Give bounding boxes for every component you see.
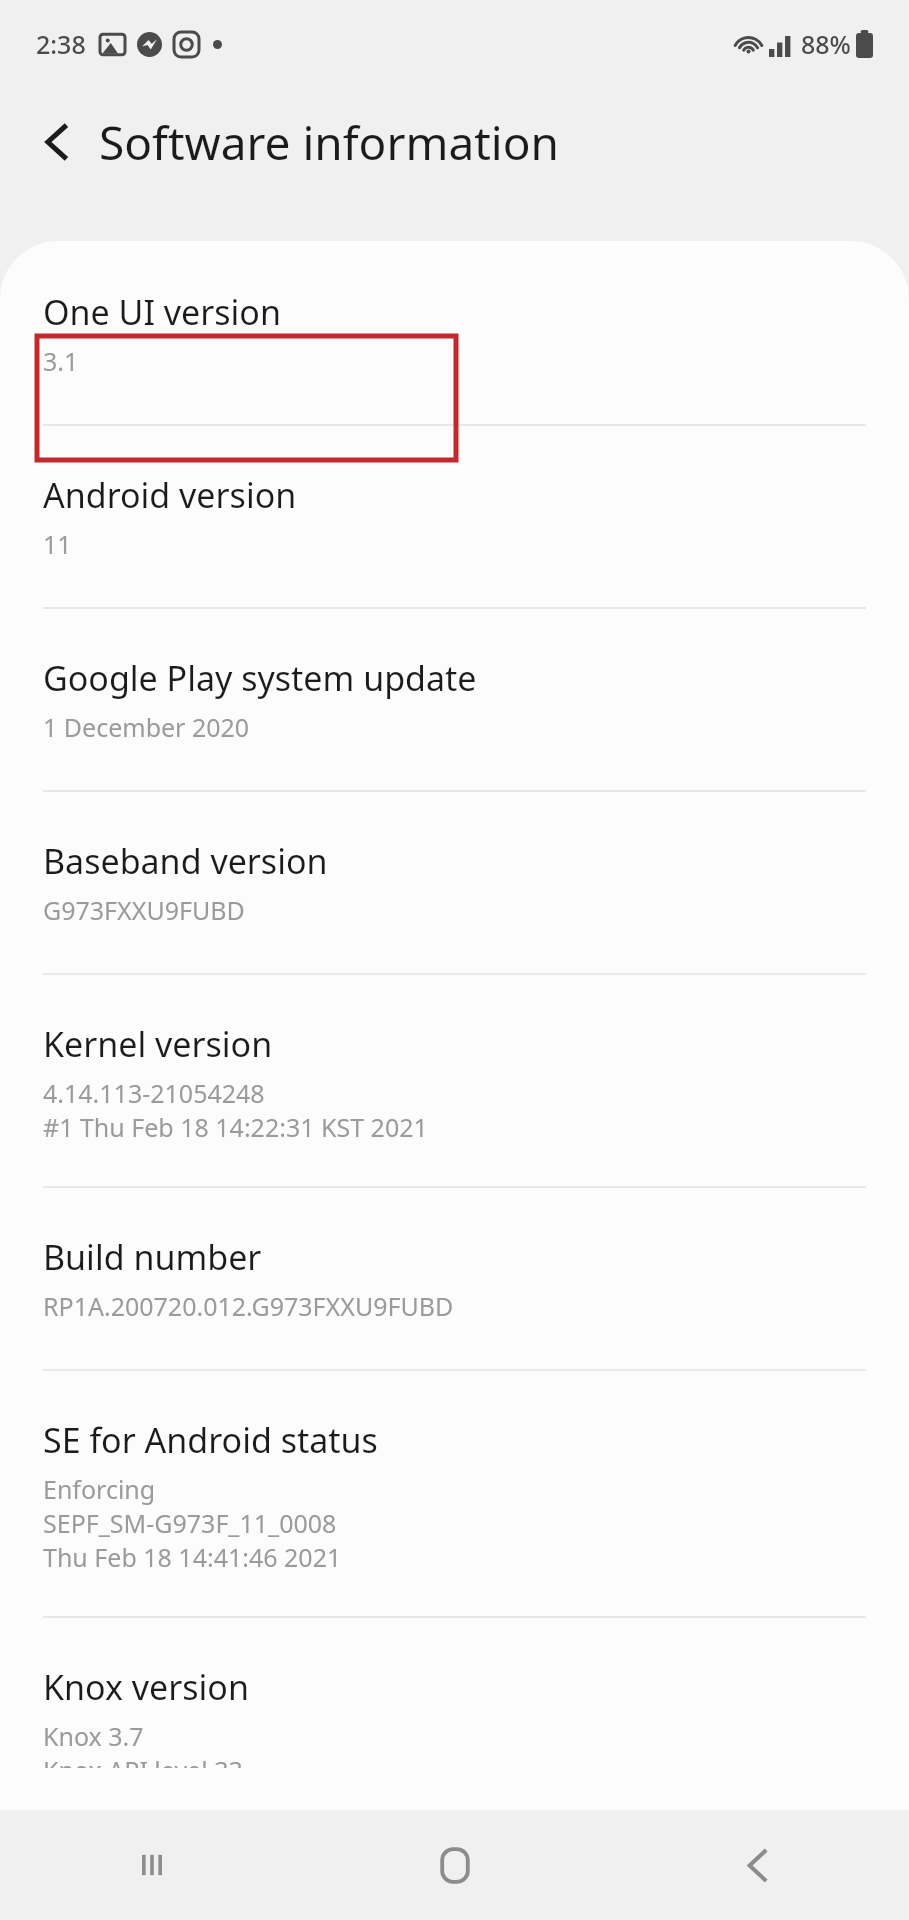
staticText: 3.1 xyxy=(43,344,79,378)
staticText: One UI version xyxy=(43,289,281,335)
staticText: SEPF_SM-G973F_11_0008 xyxy=(43,1506,337,1540)
staticText: Knox API level 33 xyxy=(43,1753,243,1768)
staticText: Software information xyxy=(99,111,559,174)
button[interactable]: Knox version xyxy=(0,1618,909,1810)
staticText: 1 December 2020 xyxy=(43,710,250,744)
button[interactable]: Build number xyxy=(0,1188,909,1369)
staticText: RP1A.200720.012.G973FXXU9FUBD xyxy=(43,1289,454,1323)
button[interactable]: Google Play system update xyxy=(0,609,909,790)
button[interactable]: Kernel version xyxy=(0,975,909,1186)
staticText: Kernel version xyxy=(43,1021,273,1067)
staticText: Baseband version xyxy=(43,838,328,884)
staticText: 11 xyxy=(43,527,72,561)
staticText: Knox version xyxy=(43,1664,249,1710)
staticText: SE for Android status xyxy=(43,1417,378,1463)
staticText: Enforcing xyxy=(43,1472,156,1506)
staticText: Thu Feb 18 14:41:46 2021 xyxy=(43,1540,342,1574)
button[interactable]: One UI version xyxy=(0,241,909,424)
staticText: Google Play system update xyxy=(43,655,477,701)
staticText: 88% xyxy=(801,27,851,61)
staticText: 4.14.113-21054248 xyxy=(43,1076,265,1110)
button[interactable]: Home xyxy=(303,1810,606,1920)
staticText: #1 Thu Feb 18 14:22:31 KST 2021 xyxy=(43,1110,428,1144)
staticText: G973FXXU9FUBD xyxy=(43,893,245,927)
staticText: Build number xyxy=(43,1234,262,1280)
button[interactable]: Back xyxy=(12,97,102,187)
staticText: Knox 3.7 xyxy=(43,1719,144,1753)
button[interactable]: Android version xyxy=(0,426,909,607)
staticText: Android version xyxy=(43,472,297,518)
button[interactable]: Recents xyxy=(0,1810,303,1920)
button[interactable]: SE for Android status xyxy=(0,1371,909,1616)
button[interactable]: Baseband version xyxy=(0,792,909,973)
staticText: 2:38 xyxy=(36,27,86,61)
button[interactable]: Back xyxy=(606,1810,909,1920)
